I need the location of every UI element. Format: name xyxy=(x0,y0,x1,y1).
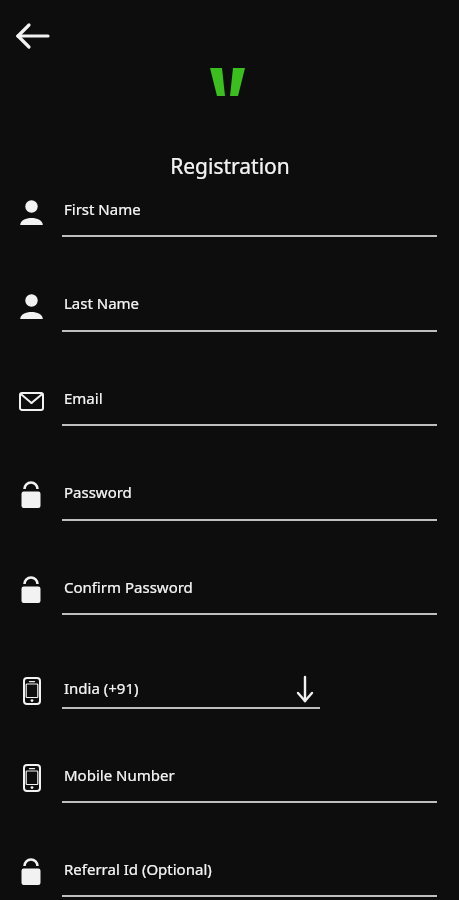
staticText: Last Name xyxy=(64,293,140,313)
staticText: First Name xyxy=(64,199,141,219)
staticText: India (+91) xyxy=(64,678,139,698)
button[interactable] xyxy=(14,662,445,711)
button[interactable] xyxy=(14,372,445,428)
staticText: Confirm Password xyxy=(64,577,193,597)
button[interactable]: Back xyxy=(10,12,58,60)
staticText: Referral Id (Optional) xyxy=(64,859,212,879)
button[interactable]: Select country code xyxy=(288,672,322,706)
button[interactable] xyxy=(14,749,445,805)
button[interactable] xyxy=(14,183,445,239)
button[interactable] xyxy=(14,466,445,523)
staticText: Registration xyxy=(170,152,290,181)
button[interactable] xyxy=(14,843,445,899)
button[interactable] xyxy=(14,561,445,617)
staticText: Password xyxy=(64,482,132,502)
button[interactable] xyxy=(14,277,445,334)
staticText: Mobile Number xyxy=(64,765,175,785)
staticText: Email xyxy=(64,388,103,408)
